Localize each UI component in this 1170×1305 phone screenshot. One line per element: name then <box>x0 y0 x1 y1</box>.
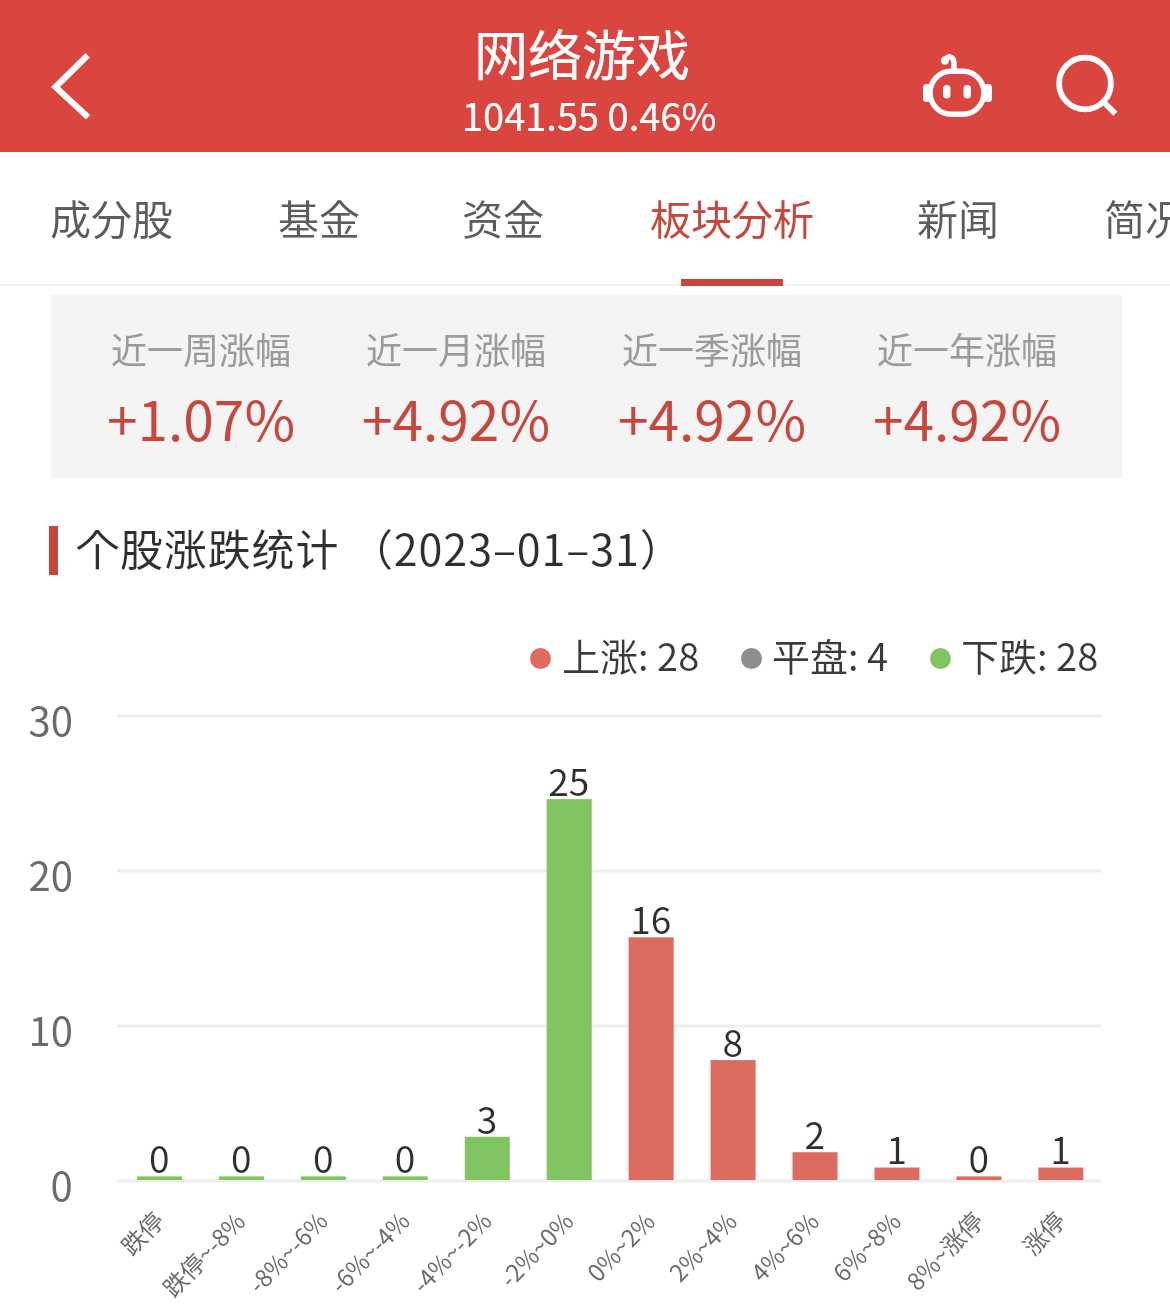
staticText: 网络游戏 <box>474 13 690 91</box>
staticText: 资金 <box>462 187 544 246</box>
staticText: 新闻 <box>917 187 999 246</box>
staticText: 成分股 <box>50 187 173 246</box>
staticText: 近一月涨幅 <box>366 322 547 374</box>
staticText: +1.07% <box>107 377 296 457</box>
button[interactable]: 近一月涨幅 <box>328 295 584 478</box>
button[interactable]: 近一周涨幅 <box>73 295 329 478</box>
staticText: 平盘: 4 <box>772 627 889 682</box>
staticText: 下跌: 28 <box>961 627 1099 682</box>
button[interactable]: AI assistant <box>900 33 1015 139</box>
button[interactable]: 资金 <box>410 152 596 284</box>
staticText: 近一周涨幅 <box>111 322 292 374</box>
button[interactable]: 近一季涨幅 <box>584 295 840 478</box>
button[interactable]: 成分股 <box>0 152 225 284</box>
staticText: 1041.55 0.46% <box>462 87 717 142</box>
staticText: +4.92% <box>618 377 807 457</box>
staticText: 近一年涨幅 <box>877 322 1058 374</box>
staticText: 简况 <box>1104 187 1170 246</box>
button[interactable]: Search <box>1035 33 1143 139</box>
staticText: 上涨: 28 <box>562 627 700 682</box>
staticText: 基金 <box>278 187 360 246</box>
staticText: 板块分析 <box>650 187 814 246</box>
staticText: +4.92% <box>873 377 1062 457</box>
staticText: 个股涨跌统计 （2023–01–31） <box>76 516 684 578</box>
staticText: 近一季涨幅 <box>622 322 803 374</box>
button[interactable]: 简况 <box>1052 152 1170 284</box>
staticText: +4.92% <box>362 377 551 457</box>
button[interactable]: 板块分析 <box>598 152 866 284</box>
button[interactable]: 新闻 <box>865 152 1051 284</box>
button[interactable]: Back <box>0 0 150 152</box>
button[interactable]: 近一年涨幅 <box>839 295 1095 478</box>
button[interactable]: 基金 <box>226 152 412 284</box>
